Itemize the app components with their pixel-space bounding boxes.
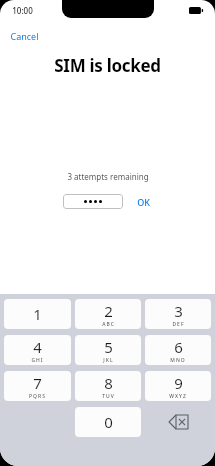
- button[interactable]: Cancel: [8, 29, 41, 43]
- button[interactable]: OK: [135, 195, 152, 209]
- button[interactable]: 4: [4, 335, 71, 365]
- staticText: 3 attempts remaining: [67, 171, 149, 182]
- staticText: TUV: [102, 393, 115, 400]
- button[interactable]: 0: [75, 407, 141, 437]
- button[interactable]: 6: [145, 335, 211, 365]
- staticText: 3: [174, 301, 183, 321]
- button[interactable]: 1: [4, 299, 71, 329]
- staticText: 7: [33, 373, 42, 393]
- staticText: 9: [174, 373, 183, 393]
- button[interactable]: 9: [145, 371, 211, 401]
- staticText: 2: [104, 301, 113, 321]
- button[interactable]: 8: [75, 371, 141, 401]
- button[interactable]: [63, 194, 123, 209]
- staticText: 1: [33, 304, 42, 324]
- staticText: GHI: [31, 357, 44, 364]
- staticText: 5: [104, 337, 113, 357]
- button[interactable]: 2: [75, 299, 141, 329]
- staticText: 0: [104, 412, 113, 432]
- button[interactable]: Delete: [145, 407, 211, 437]
- staticText: 6: [174, 337, 183, 357]
- staticText: 4: [33, 337, 42, 357]
- staticText: 8: [104, 373, 113, 393]
- staticText: PQRS: [29, 393, 46, 400]
- staticText: SIM is locked: [54, 54, 161, 77]
- staticText: WXYZ: [169, 393, 187, 400]
- staticText: ABC: [102, 321, 115, 328]
- staticText: DEF: [172, 321, 185, 328]
- button[interactable]: 3: [145, 299, 211, 329]
- staticText: JKL: [103, 357, 114, 364]
- staticText: MNO: [170, 357, 186, 364]
- button[interactable]: 7: [4, 371, 71, 401]
- staticText: OK: [137, 196, 150, 208]
- staticText: 10:00: [12, 5, 33, 16]
- staticText: Cancel: [10, 30, 39, 42]
- button[interactable]: 5: [75, 335, 141, 365]
